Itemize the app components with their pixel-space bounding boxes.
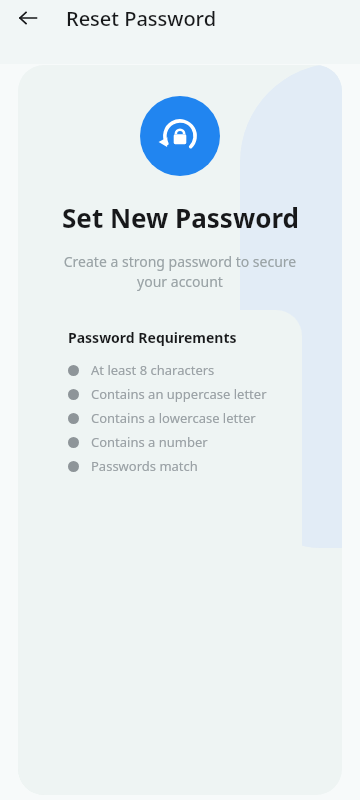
staticText: Create a strong password to secure your … [50, 252, 310, 292]
staticText: At least 8 characters [91, 361, 215, 379]
button[interactable]: Passwords match [68, 454, 198, 478]
staticText: Passwords match [91, 457, 198, 475]
staticText: Reset Password [66, 5, 217, 32]
button[interactable]: Back [10, 0, 46, 36]
staticText: Contains a lowercase letter [91, 409, 256, 427]
button[interactable]: At least 8 characters [68, 358, 215, 382]
staticText: Password Requirements [68, 328, 237, 347]
staticText: Set New Password [62, 200, 299, 235]
staticText: Contains an uppercase letter [91, 385, 267, 403]
button[interactable]: Contains an uppercase letter [68, 382, 267, 406]
button[interactable]: Contains a number [68, 430, 208, 454]
staticText: Contains a number [91, 433, 208, 451]
button[interactable]: Contains a lowercase letter [68, 406, 256, 430]
